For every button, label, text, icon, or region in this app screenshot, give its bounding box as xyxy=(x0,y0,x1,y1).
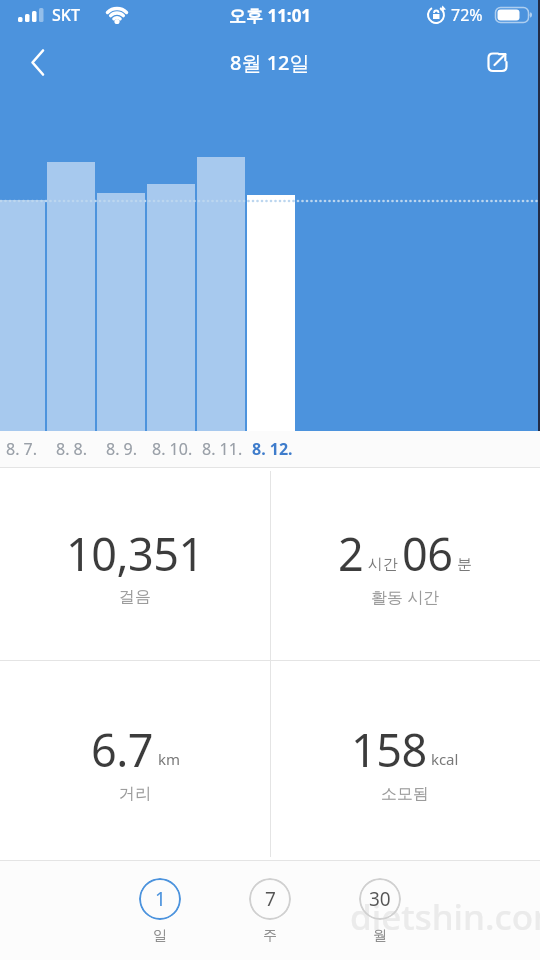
button[interactable]: 30 xyxy=(350,878,410,945)
staticText: 오후 11:01 xyxy=(229,4,312,27)
staticText: 7 xyxy=(265,886,276,912)
staticText: 10,351 xyxy=(66,523,204,584)
button[interactable]: 6.7 xyxy=(0,661,270,860)
staticText: 시간 xyxy=(364,553,402,573)
staticText: 거리 xyxy=(119,784,151,804)
button[interactable]: 1 xyxy=(130,878,190,945)
staticText: dietshin.com xyxy=(350,893,540,941)
staticText: 8. 12. xyxy=(252,438,293,460)
staticText: 06 xyxy=(402,523,453,584)
staticText: 1 xyxy=(155,886,166,912)
staticText: 158 xyxy=(351,719,427,780)
staticText: 소모됨 xyxy=(381,784,429,804)
staticText: km xyxy=(154,749,180,769)
staticText: 8. 10. xyxy=(152,438,193,460)
staticText: 주 xyxy=(263,927,277,945)
staticText: 6.7 xyxy=(91,719,154,780)
button[interactable]: 7 xyxy=(240,878,300,945)
button[interactable] xyxy=(476,40,520,84)
staticText: 일 xyxy=(153,927,167,945)
staticText: 걸음 xyxy=(119,587,151,607)
staticText: 8. 9. xyxy=(106,438,138,460)
button[interactable]: 158 xyxy=(270,661,540,860)
staticText: 8. 11. xyxy=(202,438,243,460)
staticText: 72% xyxy=(451,4,483,26)
button[interactable]: 2 xyxy=(270,468,540,660)
staticText: 분 xyxy=(453,553,472,573)
staticText: 8월 12일 xyxy=(230,49,310,76)
staticText: 8. 7. xyxy=(6,438,38,460)
staticText: 8. 8. xyxy=(56,438,88,460)
staticText: 2 xyxy=(338,523,364,584)
staticText: kcal xyxy=(427,749,459,769)
button[interactable] xyxy=(16,40,60,84)
staticText: 활동 시간 xyxy=(371,586,440,608)
staticText: 월 xyxy=(373,927,387,945)
staticText: SKT xyxy=(52,4,80,26)
staticText: 30 xyxy=(369,886,391,912)
button[interactable]: 10,351 xyxy=(0,468,270,660)
